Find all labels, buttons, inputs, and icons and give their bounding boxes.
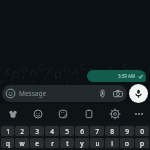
button[interactable]: 7 — [90, 126, 104, 136]
button[interactable]: Camera — [111, 87, 124, 100]
button[interactable]: o — [120, 138, 134, 148]
button[interactable]: u — [90, 138, 104, 148]
staticText: y — [80, 139, 84, 148]
button[interactable]: More — [128, 104, 150, 124]
button[interactable]: 3:39 AM — [87, 70, 146, 82]
button[interactable]: 8 — [105, 126, 119, 136]
button[interactable]: 0 — [135, 126, 149, 136]
staticText: 6 — [80, 127, 84, 136]
button[interactable]: t — [60, 138, 74, 148]
button[interactable]: w — [15, 138, 29, 148]
staticText: 9 — [125, 127, 129, 136]
staticText: e — [35, 139, 39, 148]
staticText: 7 — [95, 127, 99, 136]
staticText: 3 — [35, 127, 39, 136]
button[interactable]: Record voice message — [129, 84, 148, 103]
staticText: u — [95, 139, 100, 148]
button[interactable]: 2 — [15, 126, 29, 136]
staticText: Message — [19, 89, 47, 98]
button[interactable]: 5 — [60, 126, 74, 136]
staticText: 5 — [65, 127, 69, 136]
button[interactable]: 3 — [30, 126, 44, 136]
staticText: o — [125, 139, 129, 148]
button[interactable]: Clipboard — [76, 104, 102, 124]
button[interactable]: 6 — [75, 126, 89, 136]
staticText: i — [111, 139, 113, 148]
staticText: t — [66, 139, 69, 148]
button[interactable]: Settings — [102, 104, 128, 124]
staticText: p — [140, 139, 144, 148]
staticText: 1 — [6, 127, 10, 136]
other: Emoji — [5, 88, 16, 99]
button[interactable]: Attach — [96, 87, 109, 100]
button[interactable]: 1 — [1, 126, 14, 136]
staticText: 4 — [50, 127, 54, 136]
button[interactable]: e — [30, 138, 44, 148]
staticText: w — [19, 139, 25, 148]
staticText: q — [6, 139, 10, 148]
button[interactable]: Emoji — [25, 104, 50, 124]
staticText: 8 — [110, 127, 114, 136]
staticText: 2 — [20, 127, 24, 136]
button[interactable]: Emoji — [2, 85, 127, 102]
button[interactable]: r — [45, 138, 59, 148]
button[interactable]: 4 — [45, 126, 59, 136]
button[interactable]: p — [135, 138, 149, 148]
button[interactable]: q — [1, 138, 14, 148]
staticText: 3:39 AM — [118, 73, 136, 79]
staticText: 0 — [140, 127, 144, 136]
button[interactable]: Stickers — [50, 104, 76, 124]
staticText: r — [51, 139, 54, 148]
button[interactable]: i — [105, 138, 119, 148]
button[interactable]: 9 — [120, 126, 134, 136]
button[interactable]: y — [75, 138, 89, 148]
button[interactable]: Recent — [0, 104, 25, 124]
